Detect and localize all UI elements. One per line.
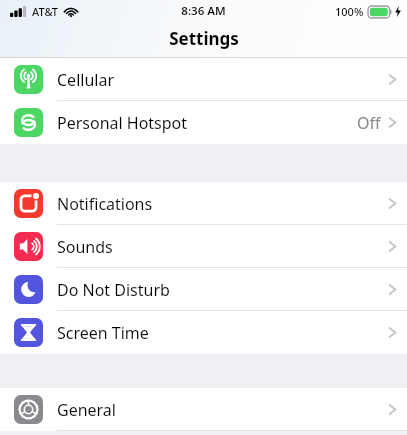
staticText: Settings (169, 27, 239, 50)
button[interactable]: Sounds (0, 225, 407, 268)
staticText: 100% (335, 4, 364, 19)
button[interactable]: Do Not Disturb (0, 268, 407, 311)
button[interactable]: Cellular (0, 58, 407, 101)
staticText: Personal Hotspot (57, 112, 188, 134)
button[interactable]: Screen Time (0, 311, 407, 354)
staticText: Cellular (57, 69, 114, 91)
staticText: Off (357, 112, 381, 134)
staticText: Sounds (57, 236, 113, 258)
staticText: General (57, 399, 116, 421)
button[interactable]: Personal Hotspot (0, 101, 407, 144)
button[interactable]: General (0, 388, 407, 431)
staticText: 8:36 AM (181, 3, 226, 19)
staticText: Notifications (57, 193, 153, 215)
button[interactable]: Notifications (0, 182, 407, 225)
staticText: Do Not Disturb (57, 279, 170, 301)
staticText: Screen Time (57, 322, 149, 344)
staticText: AT&T (32, 4, 59, 19)
